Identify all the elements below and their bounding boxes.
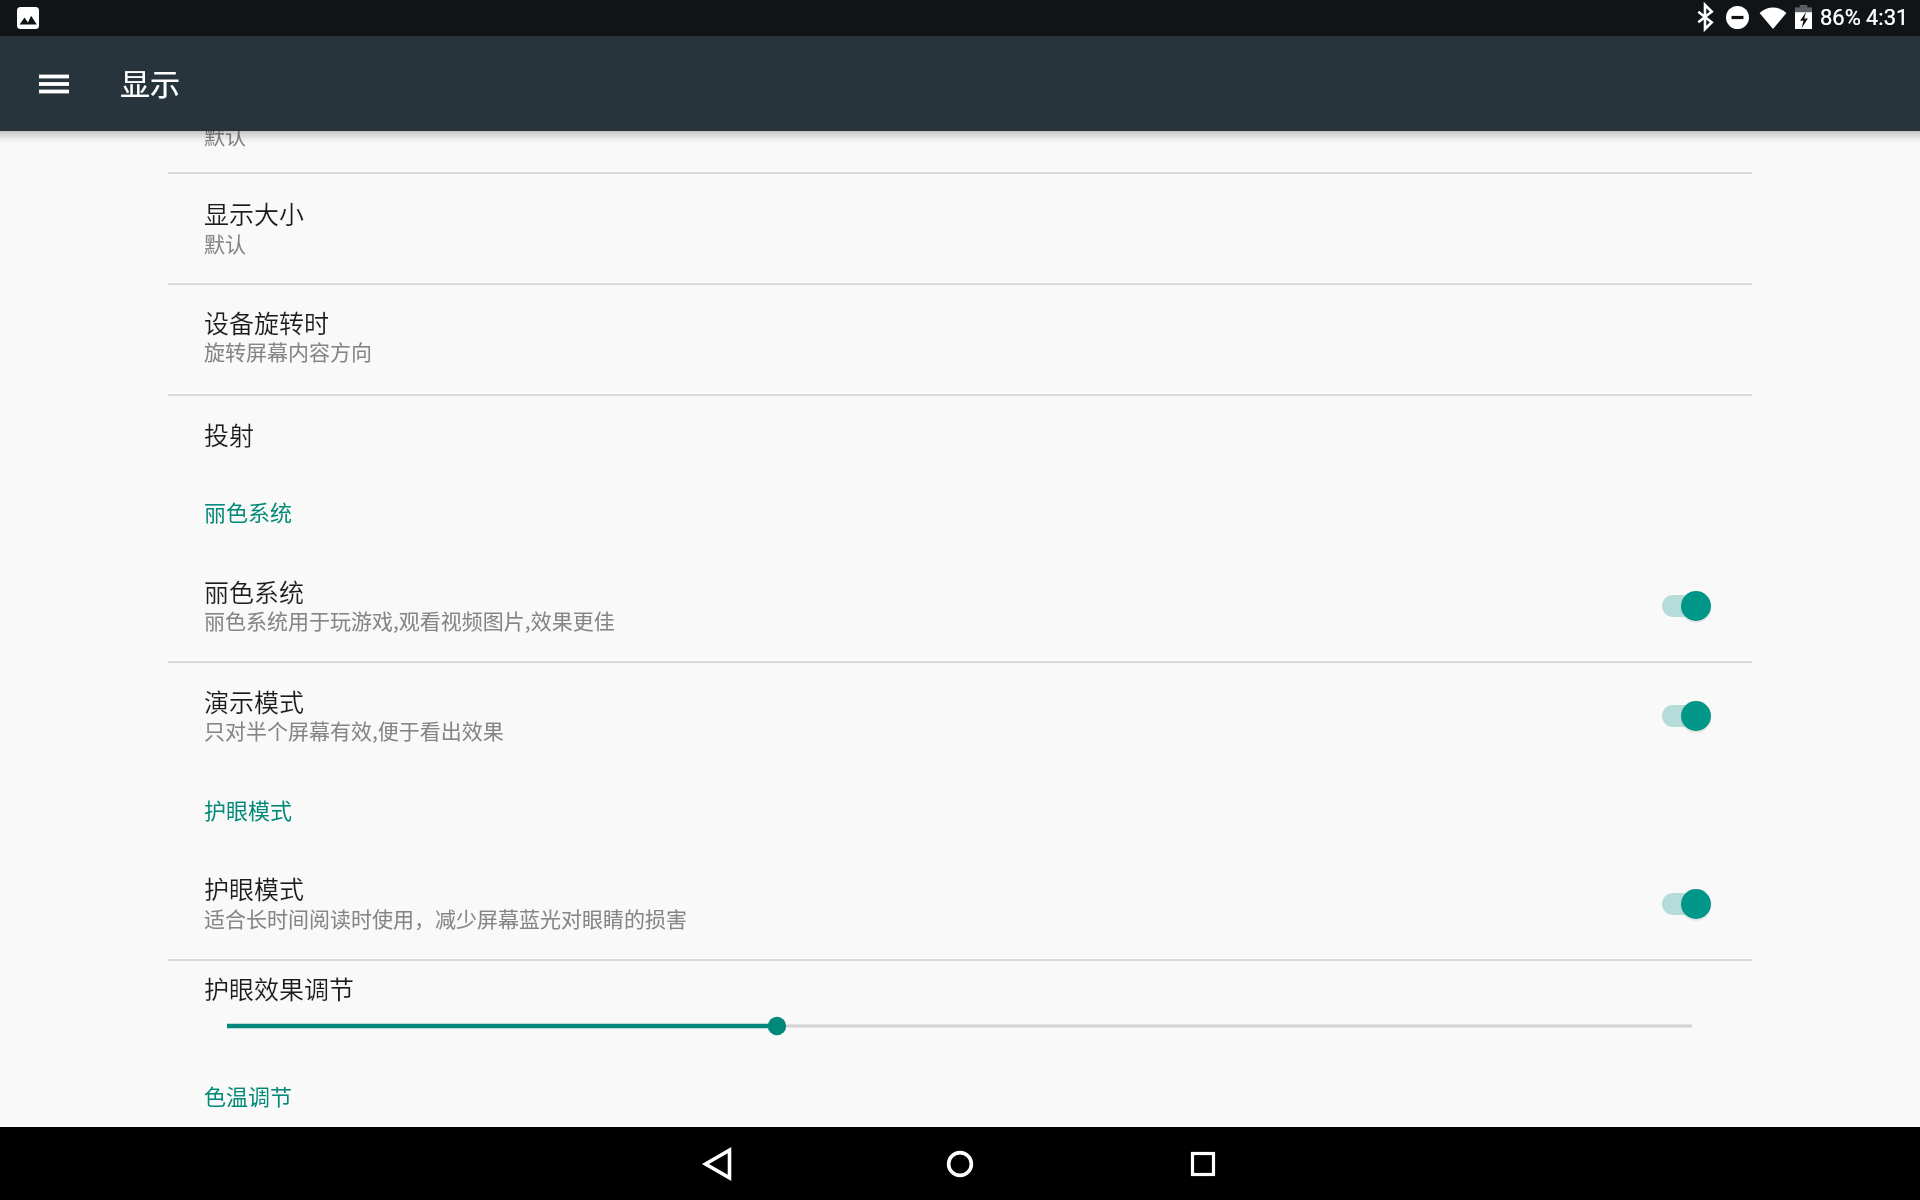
staticText: 设备旋转时 xyxy=(204,304,330,340)
button[interactable]: Home xyxy=(944,1148,976,1180)
staticText: 护眼模式 xyxy=(204,793,293,825)
staticText: 演示模式 xyxy=(204,683,305,719)
staticText: 默认 xyxy=(204,228,246,258)
staticText: 4:31 xyxy=(1866,5,1909,31)
staticText: 色温调节 xyxy=(204,1079,293,1111)
staticText: 显示大小 xyxy=(204,195,305,231)
button[interactable]: 显示大小 xyxy=(0,172,1920,283)
staticText: 护眼模式 xyxy=(204,870,305,906)
staticText: 显示 xyxy=(120,60,180,103)
staticText: 只对半个屏幕有效,便于看出效果 xyxy=(204,715,504,745)
button[interactable]: 丽色系统 xyxy=(0,545,1920,661)
staticText: 86% xyxy=(1820,5,1861,31)
staticText: 旋转屏幕内容方向 xyxy=(204,336,372,366)
button[interactable]: Recent apps xyxy=(1187,1148,1219,1180)
button[interactable]: 演示模式 xyxy=(0,661,1920,772)
button[interactable]: 设备旋转时 xyxy=(0,283,1920,394)
staticText: 丽色系统 xyxy=(204,495,293,527)
button[interactable]: 默认 xyxy=(0,60,1920,172)
staticText: 默认 xyxy=(204,120,246,150)
button[interactable]: Back xyxy=(701,1148,733,1180)
staticText: 投射 xyxy=(204,416,255,452)
button[interactable]: 护眼效果调节 xyxy=(217,1012,1703,1040)
button[interactable]: 投射 xyxy=(0,394,1920,478)
button[interactable]: 护眼模式 xyxy=(0,843,1920,959)
staticText: 适合长时间阅读时使用，减少屏幕蓝光对眼睛的损害 xyxy=(204,903,687,933)
staticText: 护眼效果调节 xyxy=(204,970,355,1006)
staticText: 丽色系统 xyxy=(204,573,305,609)
button[interactable]: Open navigation drawer xyxy=(27,57,81,111)
staticText: 丽色系统用于玩游戏,观看视频图片,效果更佳 xyxy=(204,605,615,635)
